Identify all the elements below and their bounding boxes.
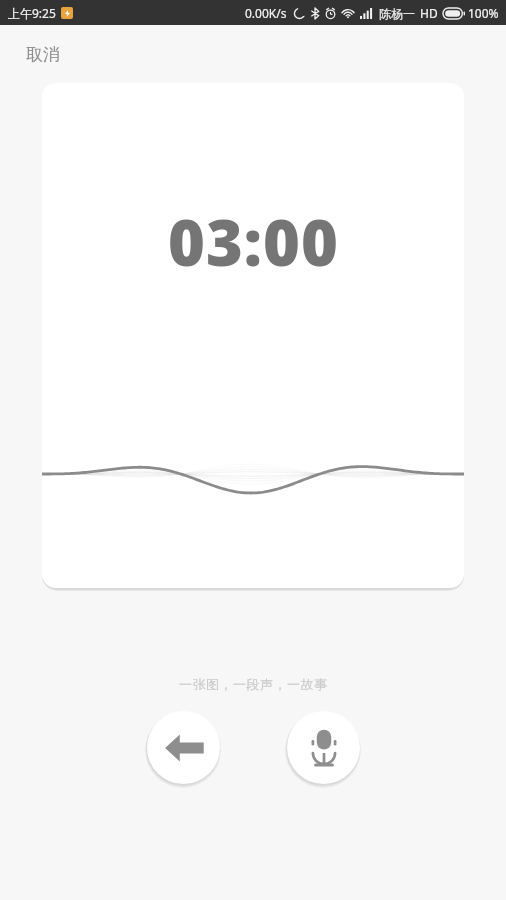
staticText: 陈杨一 bbox=[379, 6, 415, 21]
button[interactable]: Back bbox=[147, 711, 220, 784]
staticText: 03:00 bbox=[168, 199, 339, 285]
staticText: 取消 bbox=[26, 44, 60, 65]
staticText: 上午9:25 bbox=[8, 5, 56, 21]
button[interactable]: 取消 bbox=[20, 36, 66, 73]
staticText: 0.00K/s bbox=[245, 5, 287, 21]
button[interactable]: Record voice bbox=[287, 711, 360, 784]
staticText: 一张图，一段声，一故事 bbox=[179, 676, 328, 692]
staticText: HD bbox=[420, 5, 438, 21]
staticText: 100% bbox=[468, 5, 499, 21]
